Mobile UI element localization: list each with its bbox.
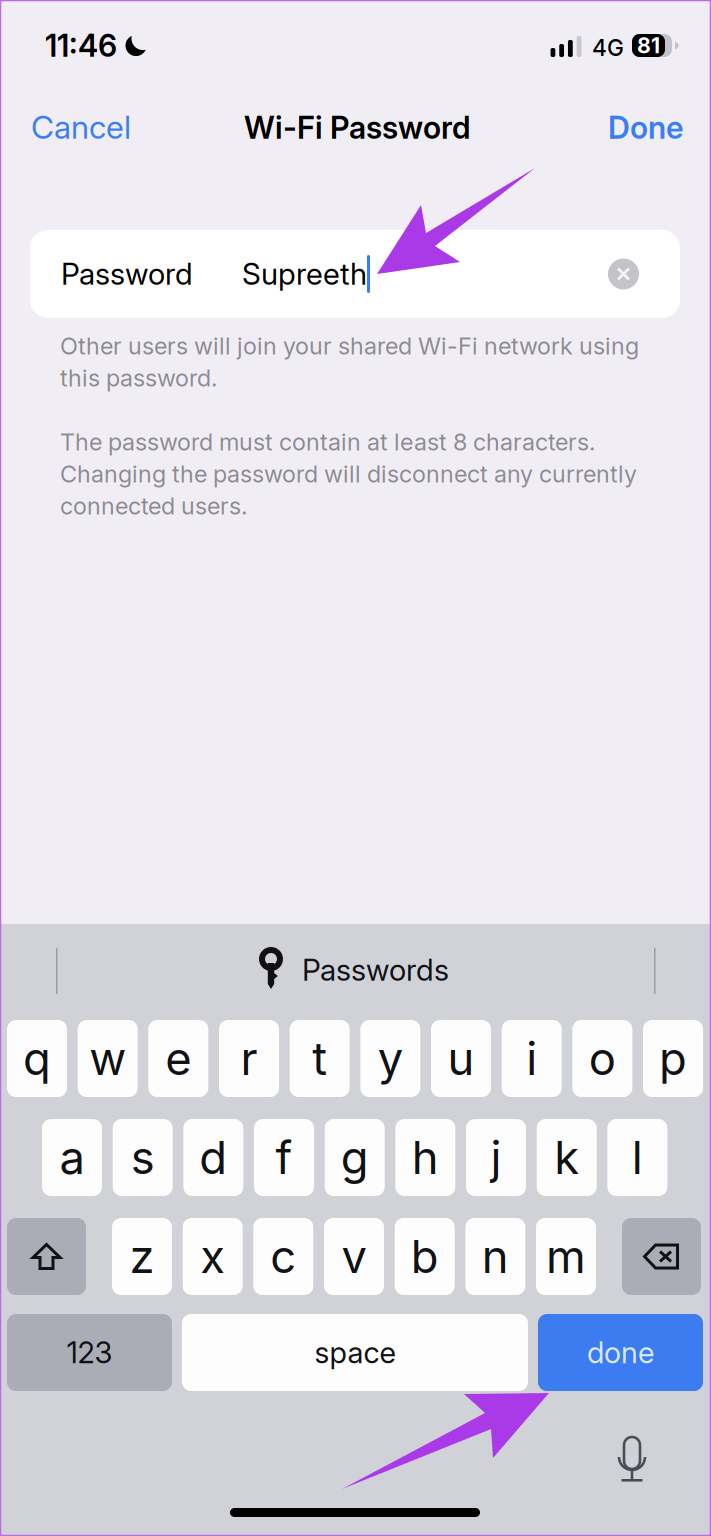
button[interactable]: Passwords (262, 950, 449, 990)
staticText: x (200, 1229, 225, 1284)
button[interactable]: Shift (7, 1218, 86, 1295)
staticText: r (240, 1031, 257, 1086)
staticText: h (412, 1130, 439, 1185)
staticText: o (589, 1031, 616, 1086)
button[interactable]: c (253, 1218, 313, 1295)
staticText: space (314, 1335, 395, 1370)
staticText: p (659, 1031, 687, 1086)
staticText: y (378, 1031, 403, 1086)
staticText: Changing the password will disconnect an… (60, 460, 637, 488)
button[interactable]: Delete (622, 1218, 701, 1295)
button[interactable]: e (148, 1020, 208, 1097)
staticText: connected users. (60, 492, 247, 520)
staticText: The password must contain at least 8 cha… (60, 428, 595, 456)
staticText: Cancel (31, 108, 131, 146)
staticText: z (129, 1229, 154, 1284)
staticText: q (23, 1031, 51, 1086)
staticText: d (199, 1130, 227, 1185)
button[interactable]: z (112, 1218, 172, 1295)
staticText: k (554, 1130, 579, 1185)
staticText: Password (61, 256, 193, 292)
button[interactable]: Done (608, 109, 684, 146)
button[interactable]: s (113, 1119, 173, 1196)
staticText: v (341, 1229, 366, 1284)
staticText: done (587, 1335, 654, 1370)
staticText: j (490, 1130, 501, 1185)
button[interactable]: o (572, 1020, 632, 1097)
staticText: c (270, 1229, 296, 1284)
button[interactable]: Clear text (608, 258, 639, 289)
staticText: 123 (66, 1335, 112, 1370)
button[interactable]: i (502, 1020, 562, 1097)
staticText: Wi-Fi Password (244, 109, 471, 146)
staticText: 11:46 (45, 27, 117, 64)
staticText: m (546, 1229, 586, 1284)
button[interactable]: a (42, 1119, 102, 1196)
button[interactable]: d (183, 1119, 243, 1196)
button[interactable]: q (7, 1020, 67, 1097)
staticText: b (411, 1229, 439, 1284)
button[interactable]: t (290, 1020, 350, 1097)
staticText: 81 (637, 33, 660, 58)
button[interactable]: f (254, 1119, 314, 1196)
staticText: l (632, 1130, 643, 1185)
staticText: e (165, 1031, 191, 1086)
button[interactable]: 123 (7, 1314, 172, 1391)
button[interactable]: h (395, 1119, 455, 1196)
staticText: f (275, 1130, 292, 1185)
button[interactable]: w (78, 1020, 138, 1097)
staticText: Other users will join your shared Wi-Fi … (60, 332, 639, 360)
button[interactable]: r (219, 1020, 279, 1097)
staticText: Passwords (302, 952, 449, 988)
staticText: g (341, 1130, 369, 1185)
staticText: n (482, 1229, 509, 1284)
staticText: t (312, 1031, 327, 1086)
button[interactable]: Cancel (31, 108, 131, 146)
button[interactable]: k (537, 1119, 597, 1196)
button[interactable]: v (324, 1218, 384, 1295)
staticText: i (526, 1031, 537, 1086)
button[interactable]: j (466, 1119, 526, 1196)
button[interactable]: space (182, 1314, 528, 1391)
button[interactable]: b (395, 1218, 455, 1295)
button[interactable]: done (538, 1314, 703, 1391)
button[interactable]: x (183, 1218, 243, 1295)
button[interactable]: Dictate (614, 1437, 650, 1483)
staticText: Done (608, 109, 684, 146)
button[interactable]: y (360, 1020, 420, 1097)
button[interactable]: m (536, 1218, 596, 1295)
button[interactable]: u (431, 1020, 491, 1097)
staticText: a (59, 1130, 84, 1185)
staticText: s (131, 1130, 155, 1185)
staticText: Supreeth (242, 256, 367, 292)
button[interactable]: n (465, 1218, 525, 1295)
staticText: w (89, 1031, 126, 1086)
button[interactable]: g (325, 1119, 385, 1196)
staticText: u (447, 1031, 474, 1086)
button[interactable]: p (643, 1020, 703, 1097)
staticText: this password. (60, 364, 217, 392)
button[interactable]: l (607, 1119, 667, 1196)
staticText: 4G (592, 34, 624, 61)
